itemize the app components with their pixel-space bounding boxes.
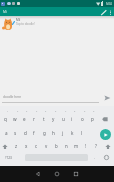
button[interactable]: [35, 171, 41, 177]
staticText: f: [33, 130, 35, 136]
button[interactable]: z: [11, 141, 21, 151]
button[interactable]: [101, 10, 107, 16]
staticText: e: [23, 116, 26, 122]
button[interactable]: u: [58, 114, 68, 124]
staticText: j: [62, 130, 64, 136]
staticText: w: [13, 116, 17, 122]
staticText: 8: [74, 110, 76, 113]
button[interactable]: [100, 116, 109, 123]
button[interactable]: [104, 95, 111, 101]
button[interactable]: a: [1, 128, 11, 138]
button[interactable]: [54, 171, 60, 177]
button[interactable]: c: [31, 141, 41, 151]
staticText: ?: [95, 143, 97, 149]
staticText: Mil: [16, 18, 21, 22]
button[interactable]: l: [77, 128, 87, 138]
button[interactable]: m: [71, 141, 81, 151]
button[interactable]: q: [0, 114, 10, 124]
staticText: 2: [17, 110, 19, 113]
button[interactable]: t: [39, 114, 49, 124]
staticText: !: [85, 143, 87, 149]
staticText: c: [35, 143, 38, 149]
staticText: Mi: [3, 9, 7, 13]
staticText: Tap to doodle!: [16, 22, 35, 26]
staticText: 4: [36, 110, 38, 113]
button[interactable]: g: [39, 128, 49, 138]
button[interactable]: ?123: [1, 153, 15, 162]
button[interactable]: Mil: [0, 17, 114, 30]
button[interactable]: d: [20, 128, 30, 138]
button[interactable]: y: [48, 114, 58, 124]
button[interactable]: f: [29, 128, 39, 138]
staticText: i: [71, 116, 73, 122]
button[interactable]: e: [19, 114, 29, 124]
button[interactable]: p: [87, 114, 97, 124]
button[interactable]: n: [61, 141, 71, 151]
staticText: 1: [7, 110, 9, 113]
staticText: 5:04: [106, 2, 112, 6]
staticText: q: [4, 116, 7, 122]
button[interactable]: [2, 144, 8, 150]
staticText: t: [43, 116, 45, 122]
button[interactable]: [104, 155, 109, 160]
button[interactable]: o: [77, 114, 87, 124]
button[interactable]: j: [58, 128, 68, 138]
button[interactable]: k: [67, 128, 77, 138]
staticText: 6: [55, 110, 57, 113]
staticText: doodle here: [3, 95, 22, 99]
button[interactable]: b: [51, 141, 61, 151]
button[interactable]: [109, 10, 112, 16]
button[interactable]: v: [41, 141, 51, 151]
button[interactable]: w: [10, 114, 20, 124]
button[interactable]: h: [48, 128, 58, 138]
button[interactable]: !: [81, 141, 91, 151]
staticText: d: [24, 130, 27, 136]
staticText: a: [5, 130, 8, 136]
button[interactable]: i: [67, 114, 77, 124]
button[interactable]: [73, 171, 79, 177]
staticText: y: [52, 116, 55, 122]
staticText: h: [52, 130, 55, 136]
staticText: 7: [65, 110, 67, 113]
staticText: m: [74, 143, 79, 149]
staticText: l: [81, 130, 83, 136]
staticText: z: [15, 143, 18, 149]
staticText: 5: [45, 110, 47, 113]
button[interactable]: [105, 144, 111, 150]
staticText: 3: [26, 110, 28, 113]
button[interactable]: ?: [91, 141, 101, 151]
button[interactable]: r: [29, 114, 39, 124]
button[interactable]: [100, 129, 111, 140]
staticText: b: [55, 143, 58, 149]
staticText: o: [81, 116, 84, 122]
staticText: p: [91, 116, 94, 122]
button[interactable]: s: [10, 128, 20, 138]
staticText: v: [45, 143, 48, 149]
staticText: ?123: [5, 156, 12, 160]
button[interactable]: x: [21, 141, 31, 151]
staticText: n: [65, 143, 68, 149]
staticText: k: [71, 130, 74, 136]
staticText: 0: [93, 110, 95, 113]
staticText: s: [14, 130, 17, 136]
staticText: x: [25, 143, 28, 149]
staticText: .: [94, 155, 96, 160]
staticText: g: [43, 130, 46, 136]
staticText: r: [33, 116, 35, 122]
staticText: u: [62, 116, 65, 122]
staticText: 9: [84, 110, 86, 113]
